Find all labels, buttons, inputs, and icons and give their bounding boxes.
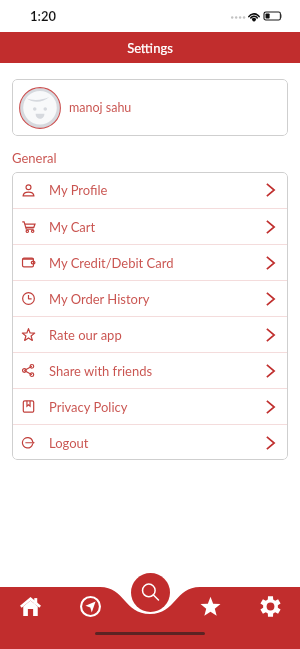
staticText: 1:20 [30, 8, 56, 24]
button[interactable]: Search [131, 573, 170, 612]
staticText: Settings [127, 40, 173, 56]
button[interactable]: Favorites [180, 585, 240, 627]
button[interactable]: My Profile [12, 172, 288, 208]
staticText: Rate our app [49, 327, 266, 343]
staticText: General [12, 150, 57, 166]
staticText: Logout [49, 435, 266, 451]
button[interactable]: Settings [240, 585, 300, 627]
staticText: My Cart [49, 219, 266, 235]
button[interactable]: My Credit/Debit Card [12, 245, 288, 280]
button[interactable]: Share with friends [12, 353, 288, 388]
button[interactable]: Logout [12, 425, 288, 460]
staticText: Privacy Policy [49, 399, 266, 415]
staticText: My Profile [49, 182, 266, 198]
staticText: Share with friends [49, 363, 266, 379]
button[interactable]: Privacy Policy [12, 389, 288, 424]
button[interactable]: Rate our app [12, 317, 288, 352]
staticText: manoj sahu [69, 100, 132, 115]
button[interactable]: manoj sahu [12, 79, 288, 136]
button[interactable]: Home [0, 585, 60, 627]
button[interactable]: My Cart [12, 209, 288, 244]
button[interactable]: My Order History [12, 281, 288, 316]
staticText: My Credit/Debit Card [49, 255, 266, 271]
staticText: My Order History [49, 291, 266, 307]
button[interactable]: Explore [60, 585, 120, 627]
